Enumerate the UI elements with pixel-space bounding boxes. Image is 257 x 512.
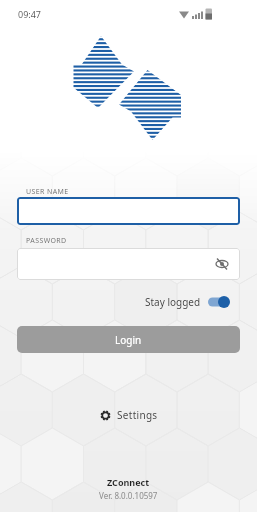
button[interactable]: Login <box>17 326 240 353</box>
staticText: USER NAME <box>26 187 69 197</box>
button[interactable] <box>17 197 240 225</box>
staticText: Ver. 8.0.0.10597 <box>99 490 158 501</box>
button[interactable] <box>17 248 240 280</box>
staticText: ZConnect <box>107 476 150 488</box>
staticText: 09:47 <box>18 8 42 20</box>
button[interactable]: Stay logged <box>145 293 232 311</box>
staticText: Settings <box>117 408 158 422</box>
staticText: Stay logged <box>145 295 201 309</box>
staticText: Login <box>115 333 142 347</box>
button[interactable]: Settings <box>100 408 158 422</box>
staticText: PASSWORD <box>26 236 67 246</box>
